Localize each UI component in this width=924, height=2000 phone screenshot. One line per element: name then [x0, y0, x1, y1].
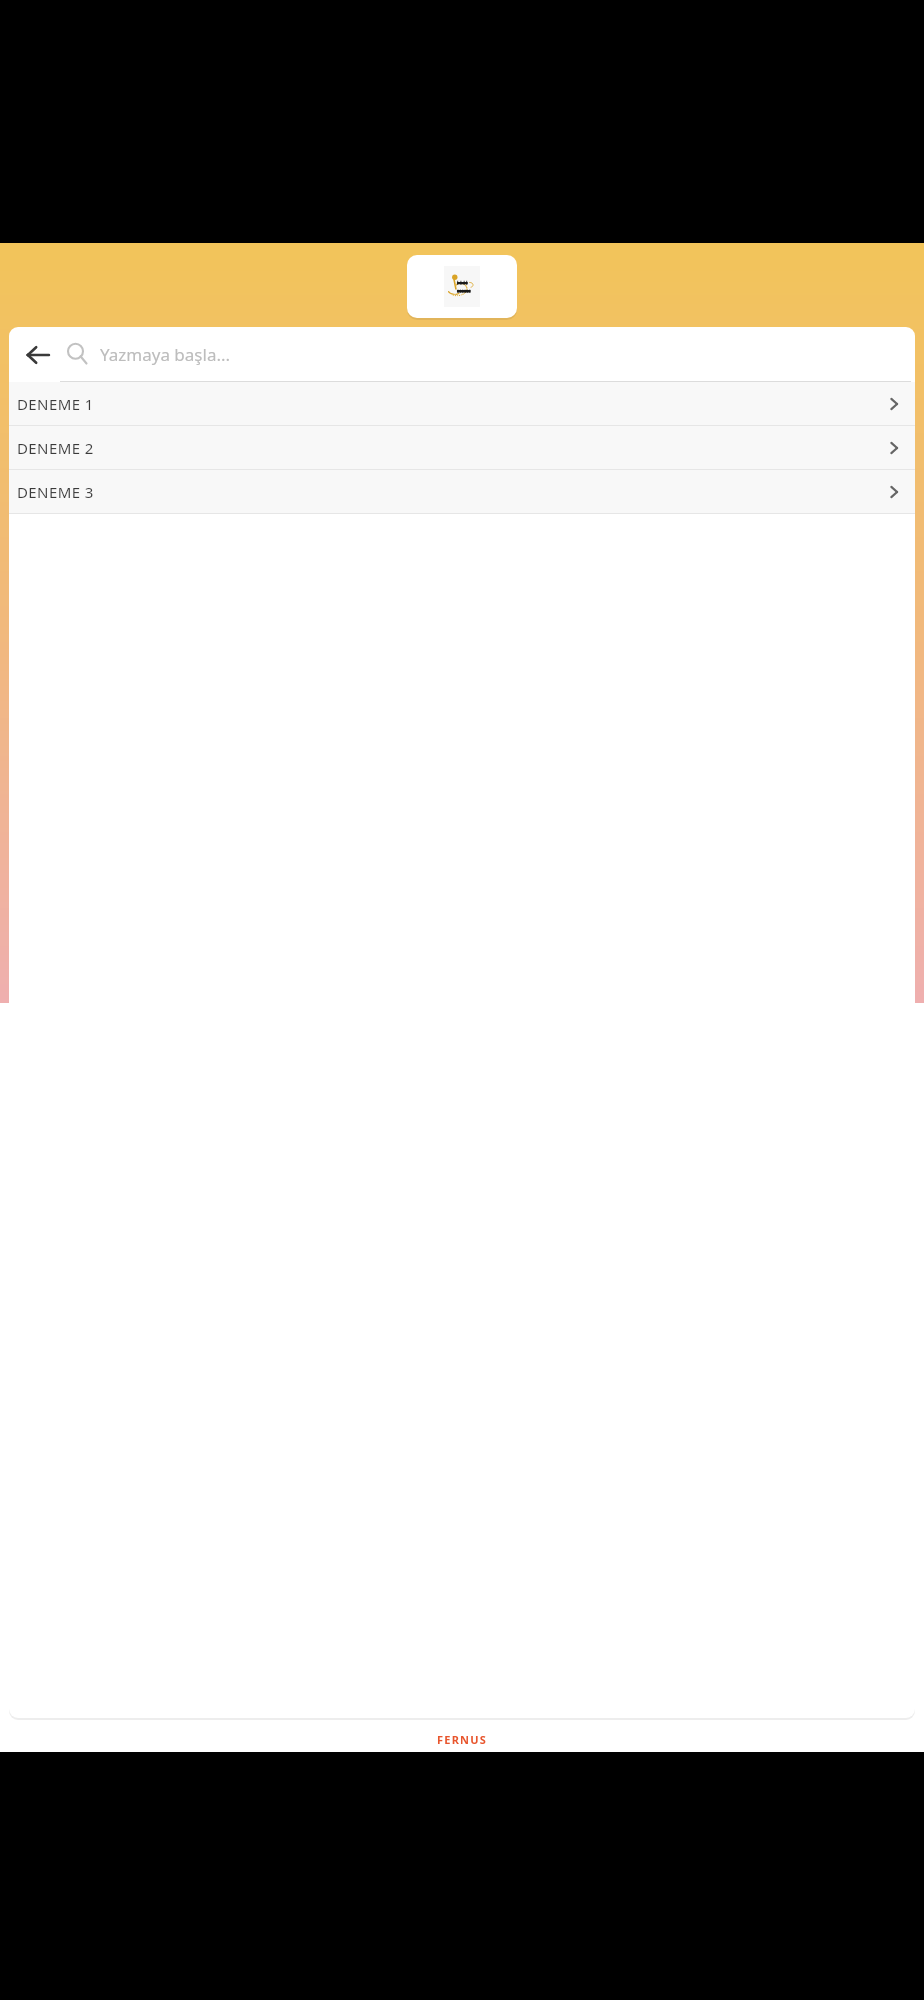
staticText: Yazmaya başla...: [100, 343, 231, 366]
staticText: DENEME 3: [17, 482, 883, 502]
staticText: FERNUS: [437, 1732, 487, 1747]
staticText: DENEME 2: [17, 438, 883, 458]
button[interactable]: Search: [60, 337, 94, 371]
staticText: DENEME 1: [17, 394, 883, 414]
button[interactable]: Back: [16, 333, 60, 377]
button[interactable]: DENEME 2: [9, 426, 915, 469]
button[interactable]: DENEME 3: [9, 470, 915, 513]
button[interactable]: DENEME 1: [9, 382, 915, 425]
